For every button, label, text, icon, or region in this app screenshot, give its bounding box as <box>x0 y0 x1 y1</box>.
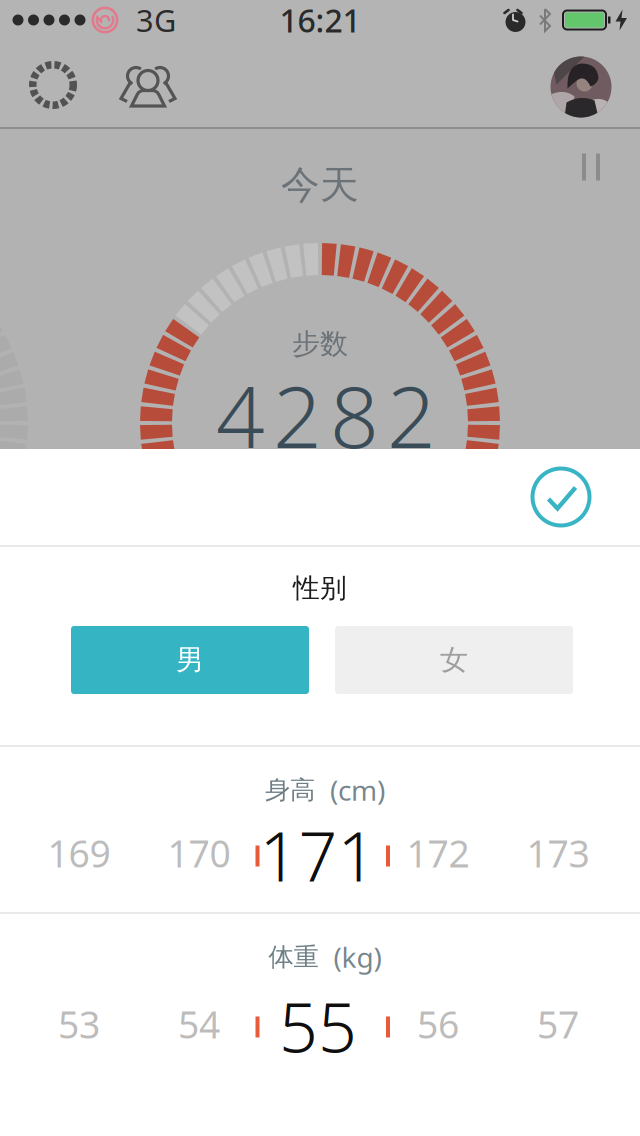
button[interactable]: 个人资料 <box>550 56 611 117</box>
staticText: 性别 <box>293 572 347 604</box>
button[interactable]: 好友 <box>118 63 178 109</box>
staticText: 3G <box>136 0 176 40</box>
staticText: (cm) <box>330 771 385 809</box>
staticText: 4282 <box>216 358 436 472</box>
staticText: 57 <box>537 999 579 1049</box>
staticText: 56 <box>417 999 459 1049</box>
button[interactable]: 暂停 <box>582 153 600 180</box>
staticText: 171 <box>259 810 376 900</box>
staticText: 170 <box>167 828 230 878</box>
staticText: 步数 <box>292 327 348 361</box>
staticText: 173 <box>526 828 589 878</box>
staticText: 16:21 <box>279 0 360 41</box>
button[interactable]: 女 <box>335 626 573 694</box>
staticText: 55 <box>279 981 357 1071</box>
button[interactable]: 53 <box>0 981 640 1071</box>
button[interactable]: 进度 <box>29 61 77 109</box>
staticText: 169 <box>47 828 110 878</box>
staticText: (kg) <box>333 938 381 976</box>
staticText: 女 <box>440 643 468 677</box>
staticText: 体重 <box>268 941 318 972</box>
button[interactable]: 169 <box>0 810 640 900</box>
button[interactable]: 确定 <box>530 466 591 527</box>
staticText: 今天 <box>281 161 359 209</box>
staticText: 54 <box>178 999 220 1049</box>
button[interactable]: 男 <box>71 626 309 694</box>
staticText: 身高 <box>265 774 315 805</box>
staticText: 53 <box>58 999 100 1049</box>
staticText: 172 <box>406 828 469 878</box>
staticText: 男 <box>176 643 204 677</box>
